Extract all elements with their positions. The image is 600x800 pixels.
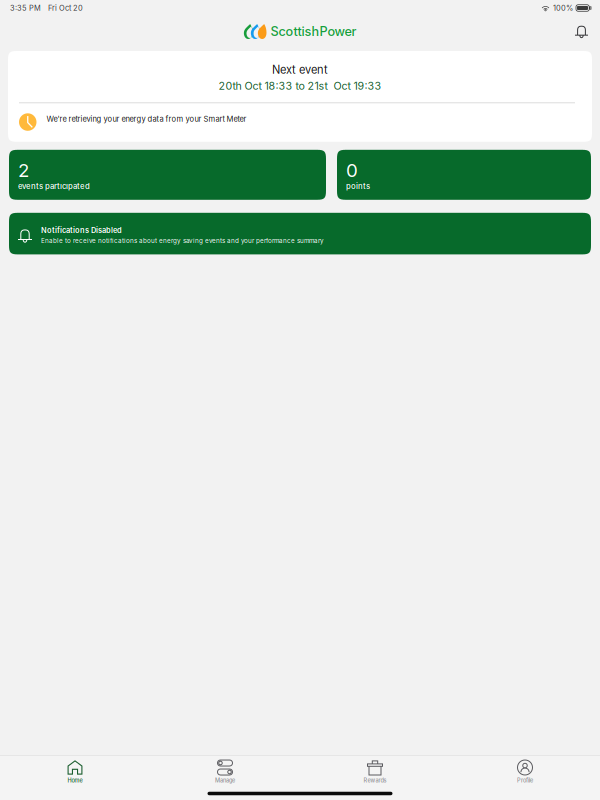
staticText: 2 — [18, 159, 29, 181]
button[interactable]: Manage — [150, 760, 300, 787]
staticText: ScottishPower — [270, 24, 356, 39]
staticText: Home — [67, 777, 82, 784]
staticText: Next event — [272, 63, 328, 76]
staticText: 3:35 PM — [10, 3, 41, 12]
button[interactable]: Rewards — [300, 760, 450, 787]
staticText: 0 — [346, 159, 358, 181]
staticText: Notifications Disabled — [41, 226, 122, 235]
staticText: Rewards — [363, 777, 386, 784]
staticText: points — [346, 181, 370, 191]
staticText: events participated — [18, 181, 90, 191]
button[interactable]: Home — [0, 760, 150, 787]
button[interactable]: 0 — [337, 150, 591, 200]
staticText: We're retrieving your energy data from y… — [46, 114, 246, 123]
staticText: 100% — [553, 3, 573, 12]
button[interactable]: Profile — [450, 760, 600, 787]
staticText: Profile — [517, 777, 533, 784]
button[interactable]: Notifications — [569, 18, 594, 44]
button[interactable]: Notifications Disabled — [9, 213, 591, 254]
staticText: Fri Oct 20 — [48, 3, 83, 12]
staticText: Manage — [215, 777, 235, 784]
staticText: 20th Oct 18:33 to 21st Oct 19:33 — [218, 79, 381, 92]
button[interactable]: 2 — [9, 150, 326, 200]
staticText: Enable to receive notifications about en… — [41, 237, 324, 244]
